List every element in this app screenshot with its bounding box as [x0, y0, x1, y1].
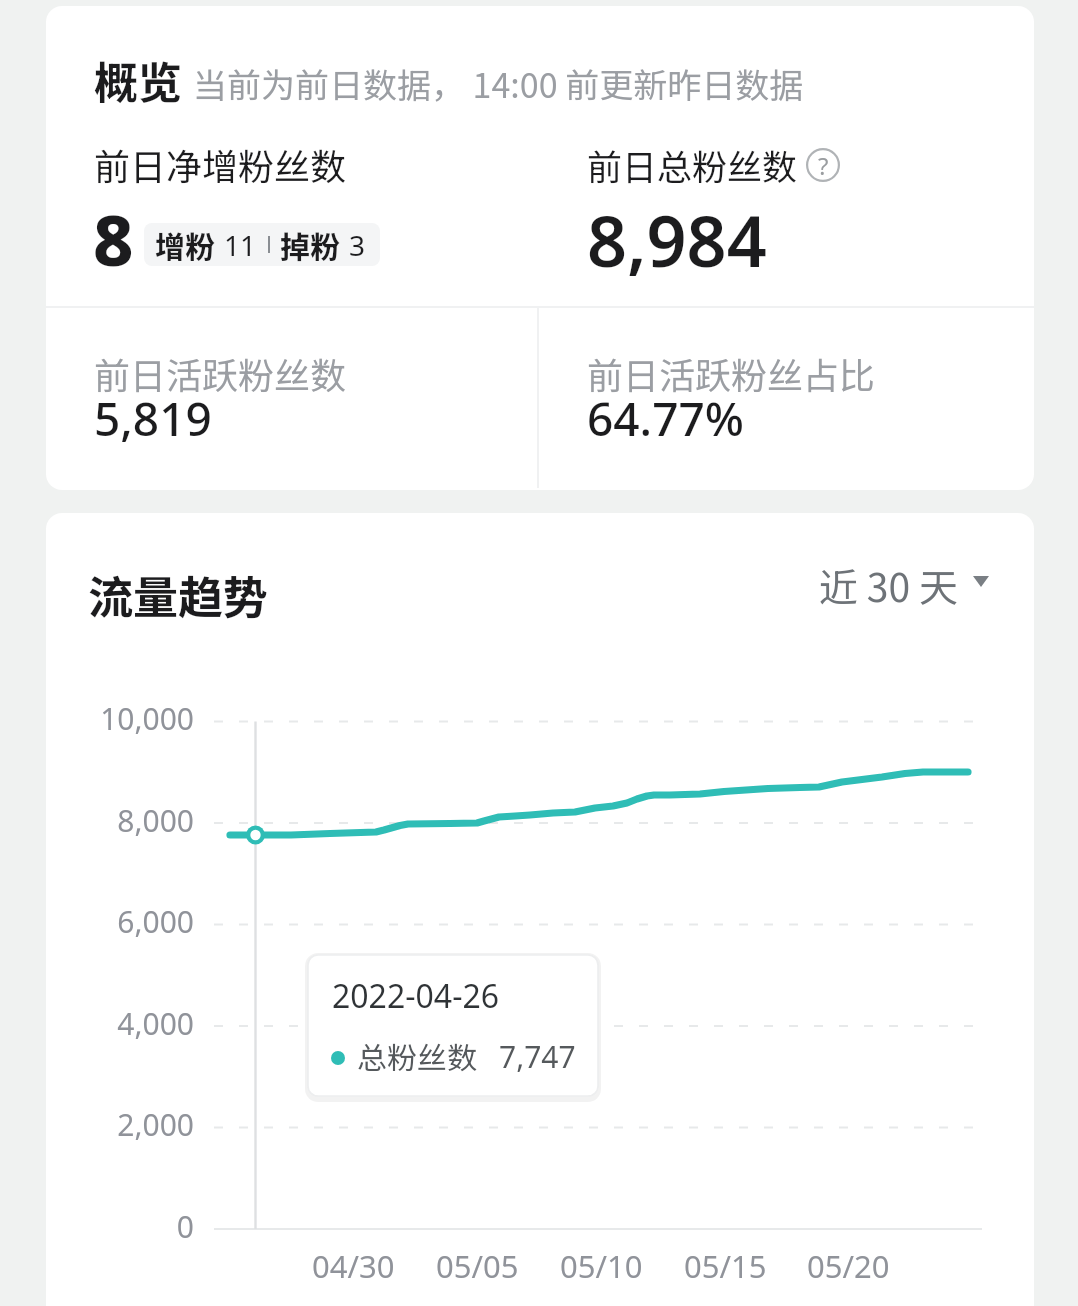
- staticText: 64.77%: [587, 387, 744, 450]
- staticText: 4,000: [46, 1003, 194, 1044]
- staticText: 前日总粉丝数: [587, 139, 798, 190]
- staticText: ?: [818, 149, 829, 182]
- staticText: 04/30: [312, 1245, 395, 1287]
- staticText: 8,984: [587, 192, 767, 287]
- button[interactable]: Help: [806, 148, 840, 182]
- staticText: 增粉: [155, 223, 215, 266]
- staticText: 8,000: [46, 800, 194, 841]
- staticText: 3: [349, 226, 366, 264]
- staticText: 05/10: [560, 1245, 643, 1287]
- staticText: 7,747: [499, 1036, 576, 1077]
- staticText: 5,819: [94, 387, 212, 450]
- staticText: 8: [93, 191, 134, 286]
- staticText: 2022-04-26: [332, 974, 500, 1018]
- staticText: 10,000: [46, 698, 194, 739]
- staticText: 2,000: [46, 1104, 194, 1145]
- staticText: 05/05: [436, 1245, 519, 1287]
- staticText: 0: [46, 1206, 194, 1247]
- staticText: 05/15: [684, 1245, 767, 1287]
- button[interactable]: 增粉: [144, 223, 380, 266]
- button[interactable]: 近 30 天: [819, 557, 989, 605]
- staticText: 近 30 天: [819, 557, 958, 605]
- staticText: 6,000: [46, 901, 194, 942]
- staticText: 流量趋势: [88, 562, 269, 627]
- staticText: 当前为前日数据， 14:00 前更新昨日数据: [193, 59, 804, 108]
- staticText: 前日活跃粉丝数: [94, 347, 347, 399]
- staticText: 前日净增粉丝数: [94, 138, 347, 190]
- staticText: 总粉丝数: [357, 1034, 477, 1077]
- staticText: 11: [224, 226, 257, 264]
- staticText: 概览: [94, 48, 182, 112]
- staticText: 掉粉: [280, 223, 340, 266]
- staticText: 05/20: [807, 1245, 890, 1287]
- staticText: 前日活跃粉丝占比: [587, 347, 876, 399]
